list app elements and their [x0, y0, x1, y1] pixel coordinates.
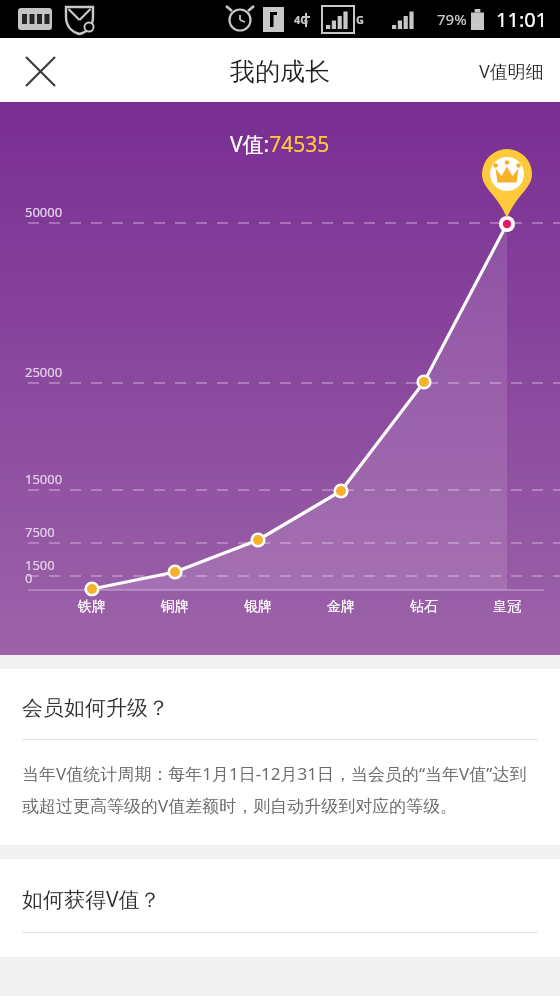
staticText: 我的成长: [230, 56, 330, 87]
staticText: 钻石: [410, 598, 438, 616]
button[interactable]: 会员如何升级？: [0, 669, 560, 845]
staticText: 79%: [437, 9, 467, 29]
staticText: 铜牌: [161, 598, 189, 616]
staticText: 金牌: [327, 598, 355, 616]
staticText: 铁牌: [78, 598, 106, 616]
staticText: 皇冠: [493, 598, 521, 616]
staticText: 7500: [25, 523, 55, 541]
staticText: G: [356, 12, 364, 27]
staticText: 当年V值统计周期：每年1月1日-12月31日，当会员的“当年V值”达到或超过更高…: [22, 762, 538, 817]
staticText: 50000: [25, 203, 63, 221]
staticText: 4G: [294, 12, 309, 27]
staticText: 15000: [25, 470, 63, 488]
staticText: 银牌: [244, 598, 272, 616]
staticText: 25000: [25, 363, 63, 381]
button[interactable]: 如何获得V值？: [0, 859, 560, 957]
staticText: V值明细: [479, 59, 544, 84]
staticText: 0: [25, 569, 33, 587]
staticText: 1500: [25, 556, 55, 574]
staticText: V值:74535: [230, 130, 330, 159]
button[interactable]: V值明细: [463, 38, 560, 104]
staticText: 如何获得V值？: [22, 885, 161, 914]
staticText: 11:01: [496, 6, 548, 33]
button[interactable]: Close: [12, 43, 68, 99]
staticText: 会员如何升级？: [22, 695, 169, 721]
